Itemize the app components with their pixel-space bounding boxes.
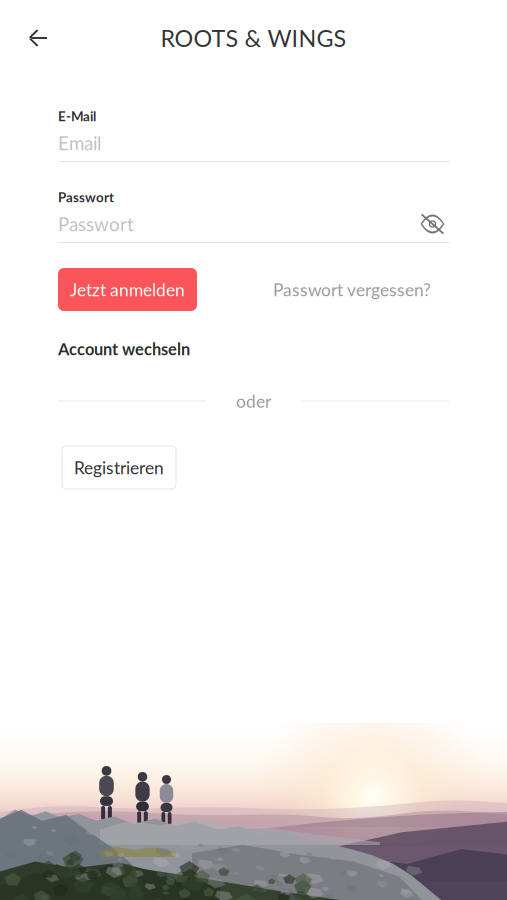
button[interactable]: Passwort vergessen?: [273, 268, 431, 311]
staticText: oder: [236, 391, 271, 411]
staticText: Passwort: [58, 189, 114, 205]
staticText: Passwort: [58, 213, 134, 235]
button[interactable]: Registrieren: [62, 446, 176, 489]
staticText: Passwort vergessen?: [273, 279, 431, 300]
staticText: E-Mail: [58, 108, 96, 124]
button[interactable]: Back: [14, 16, 62, 60]
button[interactable]: Show password: [416, 209, 449, 239]
staticText: ROOTS & WINGS: [160, 24, 346, 52]
staticText: Account wechseln: [58, 339, 190, 359]
staticText: Jetzt anmelden: [70, 279, 185, 300]
staticText: Email: [58, 132, 101, 154]
button[interactable]: Account wechseln: [58, 338, 190, 360]
staticText: Registrieren: [74, 457, 164, 478]
button[interactable]: Jetzt anmelden: [58, 268, 197, 311]
